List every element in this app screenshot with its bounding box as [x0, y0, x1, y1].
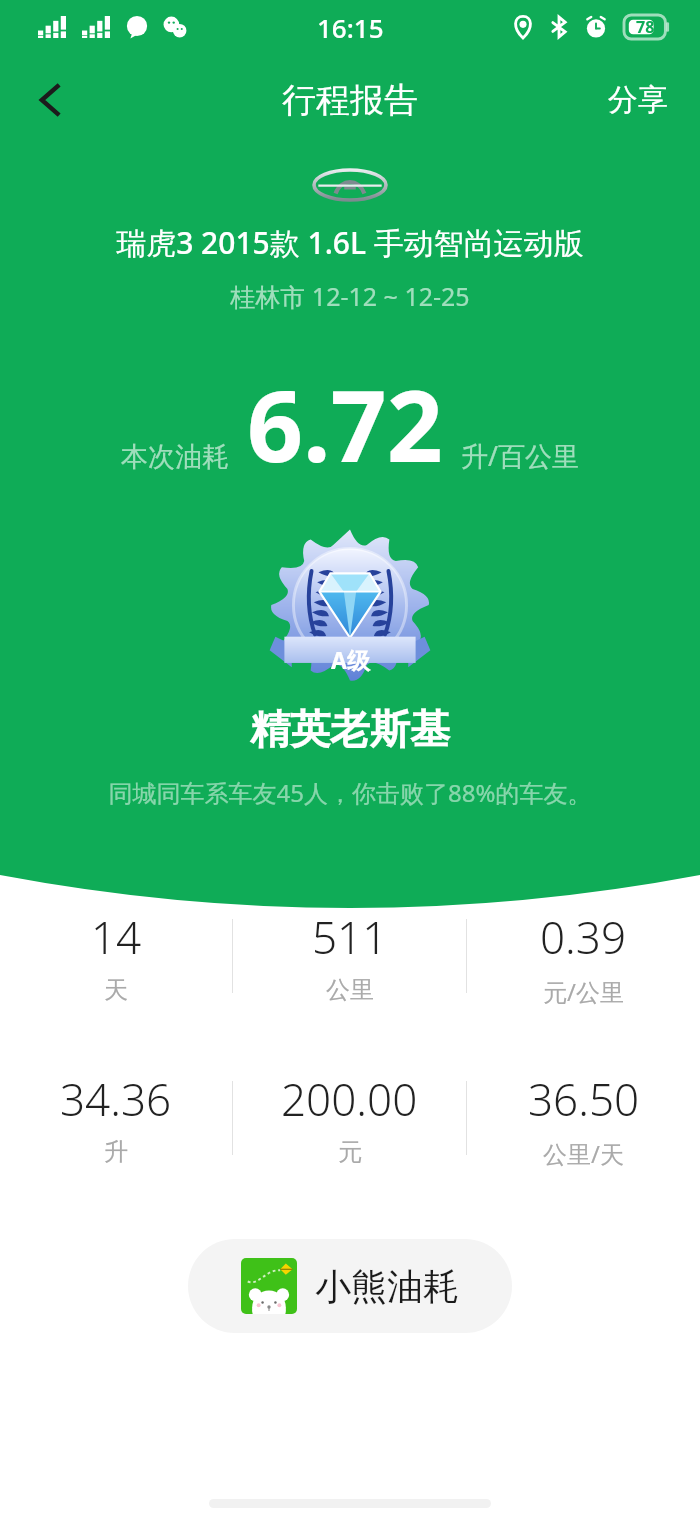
button[interactable]: 小熊油耗	[188, 1239, 512, 1333]
staticText: 天	[104, 975, 128, 1005]
staticText: 分享	[608, 81, 668, 119]
staticText: 小熊油耗	[315, 1264, 459, 1309]
button[interactable]: 分享	[596, 71, 680, 129]
other: Bluetooth	[548, 16, 570, 38]
staticText: 元	[338, 1137, 362, 1167]
button[interactable]: Back	[12, 62, 88, 138]
staticText: 0.39	[540, 907, 627, 967]
other: Location	[512, 16, 534, 38]
staticText: A级	[331, 644, 370, 675]
staticText: 瑞虎3 2015款 1.6L 手动智尚运动版	[0, 222, 700, 263]
staticText: 本次油耗	[121, 440, 229, 474]
staticText: 34.36	[60, 1069, 172, 1129]
staticText: 6.72	[247, 357, 443, 490]
staticText: 公里	[326, 975, 374, 1005]
staticText: 36.50	[528, 1069, 640, 1129]
staticText: 行程报告	[282, 79, 418, 122]
staticText: 升/百公里	[461, 437, 580, 474]
staticText: 公里/天	[543, 1137, 624, 1167]
staticText: 精英老斯基	[0, 704, 700, 754]
staticText: 升	[104, 1137, 128, 1167]
staticText: 14	[91, 907, 142, 967]
staticText: 200.00	[281, 1069, 418, 1129]
staticText: 元/公里	[543, 975, 624, 1005]
staticText: 桂林市 12-12 ~ 12-25	[0, 279, 700, 313]
staticText: 78	[636, 16, 655, 38]
staticText: 511	[312, 907, 388, 967]
staticText: 同城同车系车友45人，你击败了88%的车友。	[0, 776, 700, 809]
staticText: 16:15	[317, 10, 384, 45]
other: Alarm	[584, 15, 608, 39]
